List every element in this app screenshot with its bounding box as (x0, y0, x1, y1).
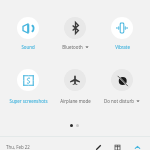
button[interactable]: Super screenshots (17, 69, 39, 91)
staticText: Bluetooth (62, 44, 83, 50)
button[interactable]: Collapse (130, 142, 144, 150)
button[interactable]: Do not disturb (111, 69, 133, 91)
button[interactable]: Airplane mode (64, 69, 86, 91)
staticText: Sound (21, 44, 35, 50)
button[interactable]: Vibrate (111, 17, 133, 39)
staticText: Super screenshots (9, 98, 48, 104)
button[interactable]: Settings (110, 142, 124, 150)
staticText: Do not disturb (104, 98, 134, 104)
staticText: Thu, Feb 22 (6, 144, 30, 150)
button[interactable]: Bluetooth (64, 17, 86, 39)
button[interactable]: Edit (91, 142, 105, 150)
staticText: Airplane mode (60, 98, 91, 104)
button[interactable]: Sound (17, 17, 39, 39)
staticText: Vibrate (115, 44, 130, 50)
